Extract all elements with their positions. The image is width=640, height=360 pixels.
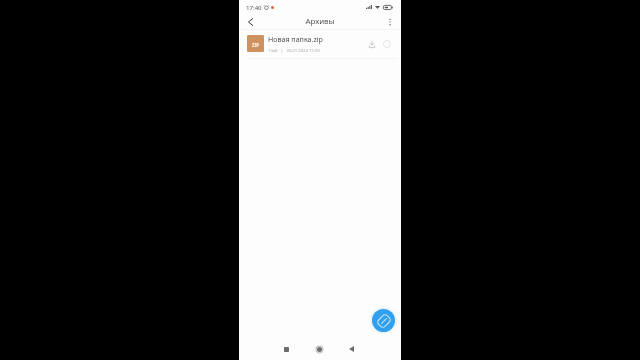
button[interactable]: Home [307,338,331,360]
button[interactable]: More options [379,14,401,29]
staticText: 13кБ | 25.01.2024 17:39 [268,48,320,54]
button[interactable]: Download [365,37,379,51]
button[interactable]: Back [339,338,363,360]
staticText: 17:40 [246,3,262,11]
staticText: Архивы [305,16,335,27]
staticText: ZIP [252,42,259,48]
button[interactable]: Recents [274,338,298,360]
button[interactable]: ZIP [239,35,401,56]
staticText: Новая папка.zip [268,34,323,44]
button[interactable]: Create archive [372,309,395,332]
button[interactable]: Select [380,37,394,51]
button[interactable]: Back [239,14,261,29]
